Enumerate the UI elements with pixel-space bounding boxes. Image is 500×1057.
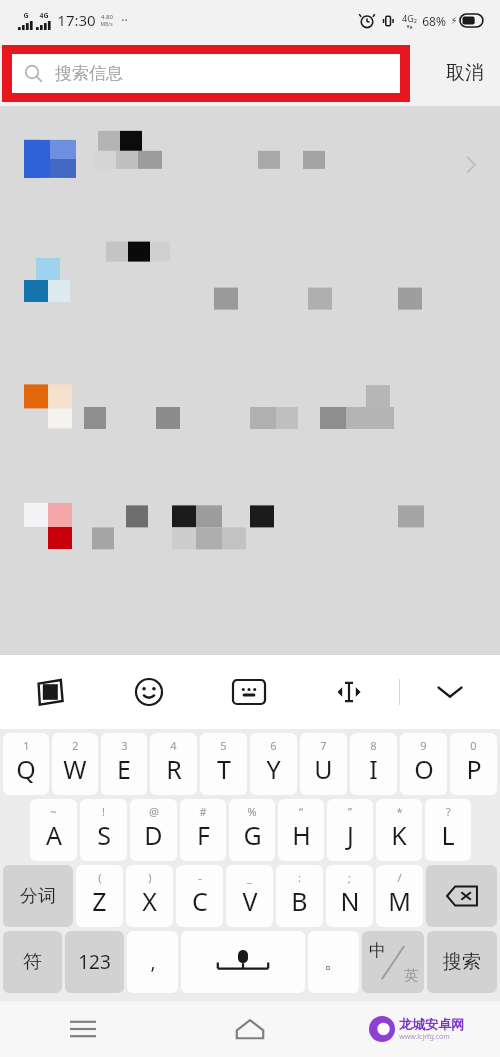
button[interactable]: ; (326, 865, 373, 927)
button[interactable]: ( (76, 865, 123, 927)
button[interactable]: 符 (3, 931, 62, 993)
button[interactable]: “ (278, 799, 324, 861)
staticText: X (142, 884, 157, 918)
button[interactable]: 0 (450, 733, 497, 795)
staticText: - (198, 870, 202, 885)
button[interactable]: 8 (350, 733, 397, 795)
button[interactable]: , (127, 931, 178, 993)
staticText: R (166, 752, 182, 786)
staticText: 中 (369, 940, 386, 961)
staticText: O (414, 752, 434, 786)
staticText: 搜索信息 (55, 63, 123, 84)
staticText: B (291, 884, 308, 918)
button[interactable]: Chinese English toggle (362, 931, 424, 993)
button[interactable]: ? (425, 799, 471, 861)
button[interactable]: ” (327, 799, 373, 861)
button[interactable] (0, 219, 500, 349)
staticText: H (292, 818, 311, 852)
button[interactable]: Search (12, 54, 400, 93)
button[interactable]: 分词 (3, 865, 73, 927)
staticText: @ (149, 804, 159, 819)
staticText: K (391, 818, 407, 852)
button[interactable]: 4 (150, 733, 197, 795)
staticText: 4G (39, 11, 49, 21)
staticText: , (150, 949, 156, 975)
button[interactable]: Sogou input (0, 655, 99, 729)
button[interactable]: _ (226, 865, 273, 927)
button[interactable]: / (376, 865, 423, 927)
staticText: A (46, 818, 62, 852)
staticText: I (369, 752, 378, 786)
staticText: 3 (121, 738, 128, 753)
button[interactable]: Voice input, space (181, 931, 305, 993)
staticText: V (242, 884, 258, 918)
staticText: P (466, 752, 482, 786)
staticText: D (144, 818, 163, 852)
staticText: Q (16, 752, 36, 786)
staticText: T (217, 752, 231, 786)
button[interactable]: # (180, 799, 226, 861)
button[interactable]: Recent apps (0, 1001, 166, 1057)
staticText: 68% (422, 13, 446, 29)
staticText: 英 (404, 967, 418, 985)
button[interactable]: 7 (300, 733, 347, 795)
staticText: G (23, 11, 29, 21)
button[interactable] (0, 349, 500, 467)
button[interactable]: 取消 (446, 61, 484, 85)
staticText: ▼▲ (406, 24, 413, 29)
button[interactable]: ! (80, 799, 127, 861)
button[interactable]: 。 (308, 931, 359, 993)
staticText: M (388, 884, 411, 918)
staticText: 6 (270, 738, 277, 753)
staticText: MB/s (100, 21, 113, 28)
button[interactable]: Keyboard layout (199, 655, 299, 729)
staticText: U (314, 752, 333, 786)
staticText: J (347, 818, 354, 852)
staticText: E (117, 752, 131, 786)
button[interactable]: : (276, 865, 323, 927)
staticText: ! (102, 804, 105, 819)
button[interactable]: Hide keyboard (400, 655, 500, 729)
button[interactable]: - (176, 865, 223, 927)
staticText: 4 (170, 738, 177, 753)
button[interactable]: 9 (400, 733, 447, 795)
staticText: 4G₂ (402, 12, 417, 24)
button[interactable]: ) (126, 865, 173, 927)
button[interactable] (0, 106, 500, 219)
button[interactable]: % (229, 799, 275, 861)
button[interactable]: Backspace (426, 865, 497, 927)
staticText: 龙城安卓网 (399, 1016, 464, 1032)
staticText: 5 (220, 738, 227, 753)
staticText: # (199, 804, 207, 819)
button[interactable]: Emoji (99, 655, 199, 729)
staticText: “ (299, 804, 303, 819)
button[interactable]: 3 (101, 733, 147, 795)
staticText: / (397, 870, 402, 885)
button[interactable]: @ (130, 799, 177, 861)
other: Search (24, 64, 43, 83)
staticText: 1 (23, 738, 30, 753)
button[interactable]: 123 (65, 931, 124, 993)
button[interactable]: 6 (250, 733, 297, 795)
staticText: N (340, 884, 360, 918)
button[interactable]: ~ (30, 799, 77, 861)
button[interactable]: 5 (200, 733, 247, 795)
staticText: ) (148, 870, 152, 885)
button[interactable]: 搜索 (427, 931, 497, 993)
staticText: 9 (420, 738, 427, 753)
staticText: L (441, 818, 455, 852)
button[interactable]: 2 (52, 733, 98, 795)
staticText: ” (348, 804, 352, 819)
staticText: 搜索 (443, 950, 481, 974)
staticText: 8 (370, 738, 377, 753)
staticText: G (243, 818, 262, 852)
button[interactable]: Cursor move (299, 655, 399, 729)
button[interactable]: * (376, 799, 422, 861)
button[interactable]: Home (166, 1001, 333, 1057)
staticText: Y (266, 752, 281, 786)
staticText: 取消 (446, 61, 484, 85)
staticText: C (192, 884, 208, 918)
button[interactable] (0, 467, 500, 587)
button[interactable]: 1 (3, 733, 49, 795)
staticText: ·· (121, 12, 128, 28)
